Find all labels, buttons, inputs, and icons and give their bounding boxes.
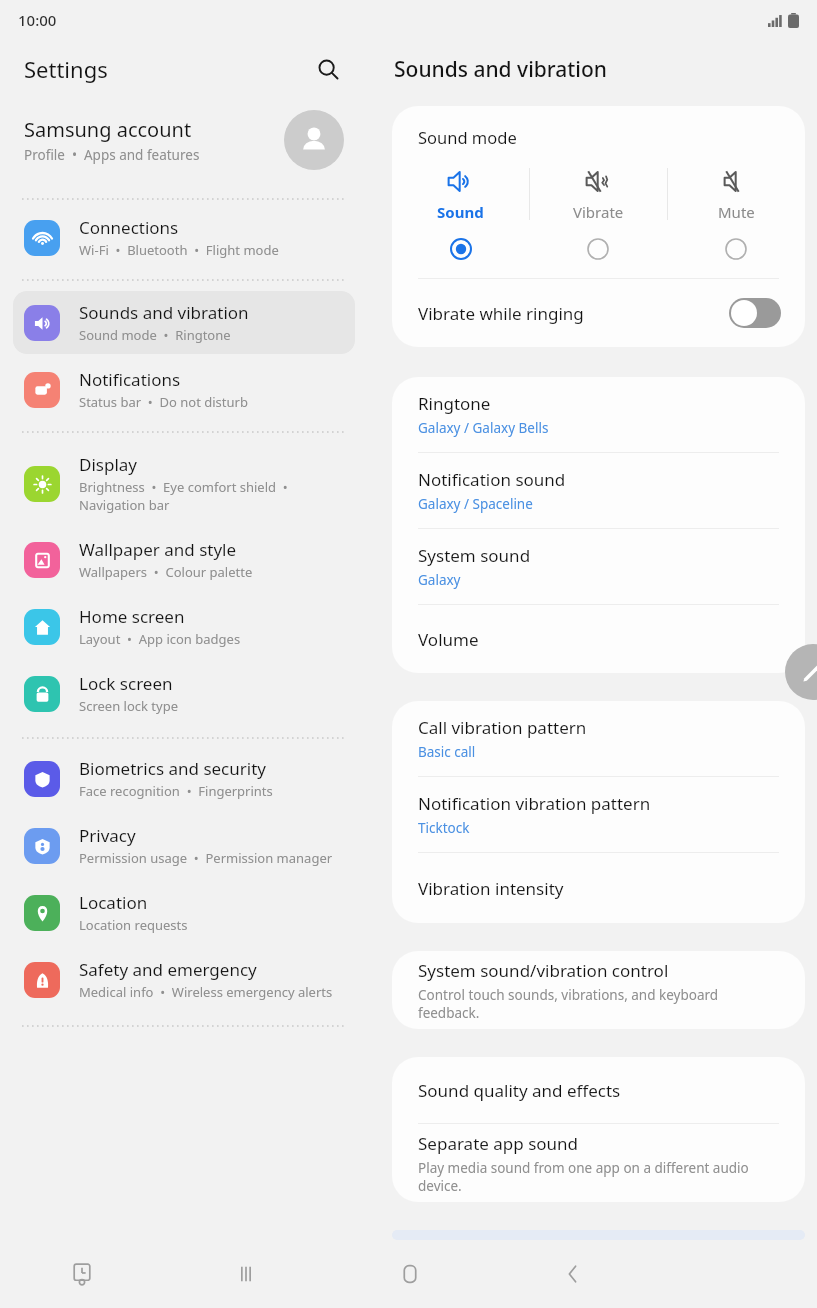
staticText: Medical info • Wireless emergency alerts (79, 983, 333, 1001)
button[interactable]: Sounds and vibration (13, 291, 355, 354)
staticText: Lock screen (79, 672, 173, 695)
staticText: Sounds and vibration (394, 55, 608, 84)
button[interactable]: Vibration intensity (392, 853, 805, 923)
staticText: Wi-Fi • Bluetooth • Flight mode (79, 241, 279, 259)
staticText: Sounds and vibration (79, 301, 249, 324)
button[interactable]: Home screen (13, 595, 355, 658)
button[interactable]: Ringtone (392, 377, 805, 452)
staticText: Brightness • Eye comfort shield • Naviga… (79, 478, 288, 514)
staticText: System sound (418, 544, 531, 567)
staticText: Vibration intensity (418, 877, 564, 900)
staticText: Profile • Apps and features (24, 146, 200, 164)
button[interactable]: Location (13, 881, 355, 944)
staticText: Separate app sound (418, 1132, 579, 1155)
button[interactable]: home (328, 1240, 491, 1308)
button[interactable]: Sound (392, 162, 529, 226)
staticText: Notification sound (418, 468, 566, 491)
staticText: Basic call (418, 743, 476, 761)
button[interactable]: Search (308, 49, 348, 89)
button[interactable]: Biometrics and security (13, 747, 355, 810)
staticText: Layout • App icon badges (79, 630, 241, 648)
staticText: Location requests (79, 916, 188, 934)
staticText: Biometrics and security (79, 757, 266, 780)
staticText: Sound quality and effects (418, 1079, 621, 1102)
button[interactable]: Safety and emergency (13, 948, 355, 1011)
button[interactable]: Not selected (529, 226, 667, 272)
staticText: Notifications (79, 368, 181, 391)
button[interactable]: Privacy (13, 814, 355, 877)
staticText: Face recognition • Fingerprints (79, 782, 273, 800)
staticText: Mute (718, 202, 755, 222)
button[interactable]: Selected (392, 226, 529, 272)
staticText: Call vibration pattern (418, 716, 587, 739)
staticText: System sound/vibration control (418, 959, 669, 982)
staticText: Vibrate while ringing (418, 302, 729, 325)
button[interactable]: Edit (785, 644, 817, 700)
staticText: Sound mode (418, 126, 517, 148)
button[interactable]: back (491, 1240, 654, 1308)
button[interactable]: Lock screen (13, 662, 355, 725)
staticText: Location (79, 891, 148, 914)
staticText: Home screen (79, 605, 185, 628)
button[interactable]: Volume (392, 605, 805, 673)
staticText: Connections (79, 216, 179, 239)
staticText: Vibrate (573, 202, 624, 222)
staticText: Galaxy / Spaceline (418, 495, 533, 513)
staticText: Control touch sounds, vibrations, and ke… (418, 986, 781, 1022)
staticText: Screen lock type (79, 697, 178, 715)
button[interactable]: Call vibration pattern (392, 701, 805, 776)
staticText: Ticktock (418, 819, 470, 837)
button[interactable]: System sound (392, 529, 805, 604)
button[interactable]: Notification sound (392, 453, 805, 528)
staticText: Status bar • Do not disturb (79, 393, 248, 411)
button[interactable]: Connections (13, 206, 355, 269)
staticText: Settings (24, 54, 108, 84)
staticText: Wallpapers • Colour palette (79, 563, 253, 581)
button[interactable]: Display (13, 443, 355, 524)
button[interactable]: Notifications (13, 358, 355, 421)
staticText: Notification vibration pattern (418, 792, 651, 815)
button[interactable]: keyboard (0, 1240, 164, 1308)
staticText: Galaxy (418, 571, 461, 589)
staticText: Volume (418, 628, 479, 651)
button[interactable]: Vibrate while ringing (392, 279, 805, 347)
button[interactable]: Sound quality and effects (392, 1057, 805, 1123)
staticText: Sound mode • Ringtone (79, 326, 231, 344)
staticText: Privacy (79, 824, 136, 847)
button[interactable]: Separate app sound (392, 1124, 805, 1202)
button[interactable]: Vibrate (530, 162, 667, 226)
staticText: Display (79, 453, 137, 476)
staticText: Permission usage • Permission manager (79, 849, 333, 867)
button[interactable]: System sound/vibration control (392, 951, 805, 1029)
staticText: Ringtone (418, 392, 491, 415)
staticText: Wallpaper and style (79, 538, 237, 561)
button[interactable]: Samsung account (0, 98, 368, 182)
staticText: Play media sound from one app on a diffe… (418, 1159, 781, 1195)
button[interactable]: Vibrate while ringing toggle (729, 298, 781, 328)
staticText: Galaxy / Galaxy Bells (418, 419, 549, 437)
button[interactable]: Wallpaper and style (13, 528, 355, 591)
staticText: 10:00 (18, 10, 57, 30)
staticText: Samsung account (24, 116, 192, 143)
button[interactable]: Not selected (667, 226, 805, 272)
button[interactable]: recents (164, 1240, 328, 1308)
button[interactable]: Mute (668, 162, 805, 226)
staticText: Sound (437, 202, 484, 222)
button[interactable]: Notification vibration pattern (392, 777, 805, 852)
staticText: Safety and emergency (79, 958, 257, 981)
